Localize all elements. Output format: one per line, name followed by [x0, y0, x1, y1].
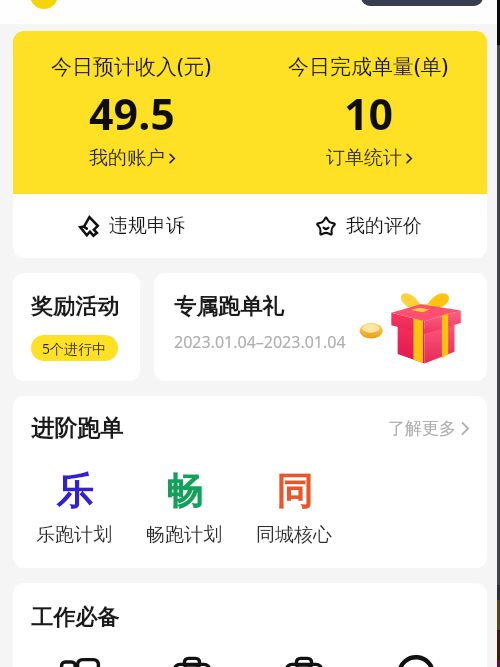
button[interactable]: 专属跑单礼: [154, 273, 487, 381]
staticText: 工作必备: [31, 604, 119, 632]
staticText: 同: [276, 468, 313, 515]
staticText: 畅: [166, 468, 203, 515]
staticText: 畅跑计划: [146, 523, 222, 547]
staticText: 了解更多: [388, 418, 456, 439]
button[interactable]: 畅: [139, 468, 229, 547]
staticText: 2023.01.04–2023.01.04: [174, 331, 346, 353]
staticText: 49.5: [89, 84, 175, 143]
button[interactable]: Delivery box: [256, 654, 351, 667]
button[interactable]: 违规申诉: [64, 204, 199, 248]
button[interactable]: 同: [249, 468, 339, 547]
staticText: 订单统计: [326, 146, 402, 170]
button[interactable]: Work bag: [144, 654, 239, 667]
staticText: 奖励活动: [31, 293, 119, 321]
staticText: 我的评价: [346, 214, 422, 238]
button[interactable]: Status: [361, 0, 483, 6]
button[interactable]: 了解更多: [384, 414, 473, 443]
button[interactable]: 奖励活动: [13, 273, 140, 381]
staticText: 乐: [56, 468, 93, 515]
staticText: 今日完成单量(单): [288, 52, 449, 81]
button[interactable]: Profile: [30, 0, 58, 9]
staticText: 专属跑单礼: [174, 293, 284, 321]
button[interactable]: 今日预计收入(元): [13, 31, 250, 194]
button[interactable]: Service: [368, 654, 463, 667]
button[interactable]: 我的评价: [301, 204, 436, 248]
staticText: 进阶跑单: [31, 414, 123, 443]
staticText: 乐跑计划: [36, 523, 112, 547]
staticText: 5个进行中: [42, 339, 107, 358]
staticText: 10: [344, 84, 394, 143]
staticText: 违规申诉: [109, 214, 185, 238]
staticText: 今日预计收入(元): [51, 52, 212, 81]
button[interactable]: Navigation: [32, 654, 127, 667]
button[interactable]: 今日完成单量(单): [250, 31, 487, 194]
staticText: 同城核心: [256, 523, 332, 547]
staticText: 我的账户: [89, 146, 165, 170]
button[interactable]: 乐: [29, 468, 119, 547]
